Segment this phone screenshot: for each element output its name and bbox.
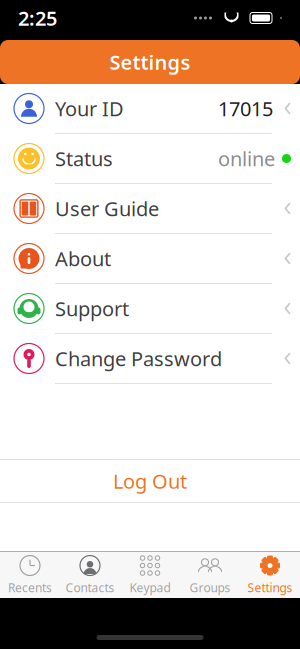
staticText: 17015: [218, 95, 273, 122]
button[interactable]: Status: [0, 134, 300, 184]
staticText: 2:25: [18, 5, 57, 31]
staticText: Recents: [8, 579, 52, 595]
button[interactable]: About: [0, 234, 300, 284]
button[interactable]: Log Out: [0, 460, 300, 502]
staticText: About: [55, 245, 111, 272]
button[interactable]: Your ID: [0, 84, 300, 134]
button[interactable]: Change Password: [0, 334, 300, 384]
staticText: Groups: [189, 579, 230, 595]
staticText: Status: [55, 145, 113, 172]
staticText: Change Password: [55, 345, 222, 372]
button[interactable]: Settings: [240, 552, 300, 598]
staticText: online: [218, 145, 275, 172]
staticText: Contacts: [65, 579, 114, 595]
staticText: Settings: [247, 579, 292, 595]
button[interactable]: User Guide: [0, 184, 300, 234]
button[interactable]: Recents: [0, 552, 60, 598]
staticText: Support: [55, 295, 129, 322]
staticText: Log Out: [113, 468, 187, 494]
button[interactable]: Support: [0, 284, 300, 334]
button[interactable]: Keypad: [120, 552, 180, 598]
button[interactable]: Groups: [180, 552, 240, 598]
staticText: Your ID: [55, 95, 124, 122]
button[interactable]: Contacts: [60, 552, 120, 598]
staticText: Settings: [109, 49, 190, 75]
staticText: Keypad: [129, 579, 170, 595]
staticText: User Guide: [55, 195, 159, 222]
